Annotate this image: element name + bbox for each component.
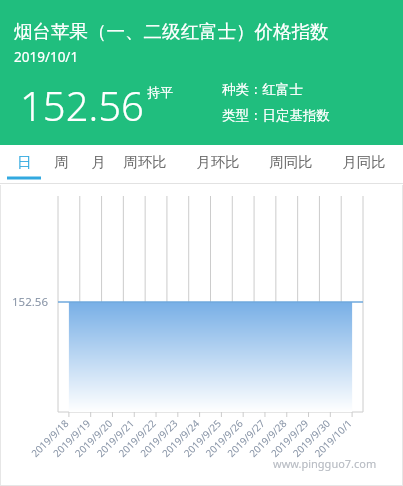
staticText: 2019/10/1 (14, 48, 79, 66)
button[interactable]: 周 (42, 145, 80, 185)
button[interactable]: 月环比 (192, 145, 244, 185)
staticText: 类型：日定基指数 (222, 107, 330, 124)
staticText: 持平 (147, 84, 173, 100)
button[interactable]: 月 (79, 145, 117, 185)
button[interactable]: 周同比 (265, 145, 317, 185)
button[interactable]: 月同比 (338, 145, 390, 185)
staticText: 周 (54, 153, 69, 171)
staticText: 周环比 (123, 153, 167, 171)
staticText: 月 (91, 153, 106, 171)
button[interactable]: 日 (5, 145, 43, 185)
button[interactable]: 周环比 (119, 145, 171, 185)
staticText: 烟台苹果（一、二级红富士）价格指数 (14, 20, 329, 43)
staticText: 月同比 (342, 153, 386, 171)
staticText: 日 (17, 153, 32, 171)
staticText: 152.56 (20, 78, 144, 132)
staticText: 月环比 (196, 153, 240, 171)
staticText: 种类：红富士 (222, 81, 303, 98)
staticText: 周同比 (269, 153, 313, 171)
